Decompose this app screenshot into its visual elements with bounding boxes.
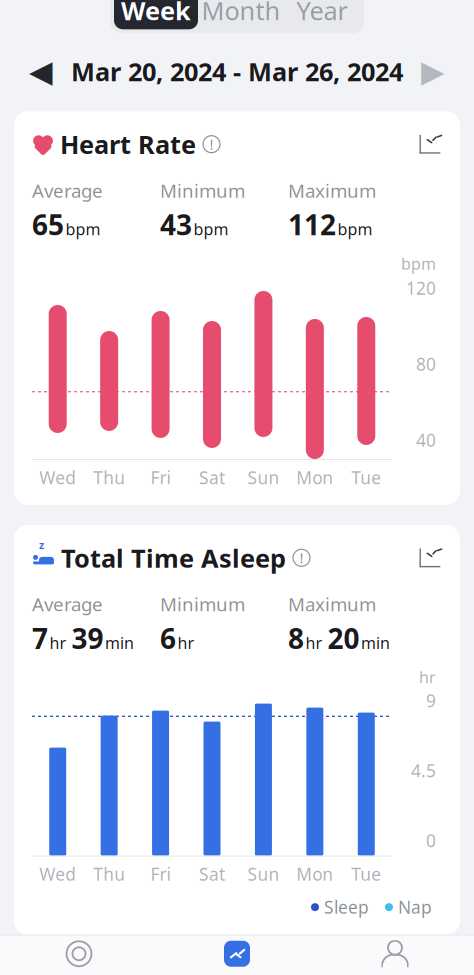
staticText: hr: [305, 632, 322, 653]
staticText: Thu: [93, 863, 125, 886]
staticText: Mon: [296, 863, 333, 886]
staticText: hr: [419, 666, 436, 688]
button[interactable]: Trends: [158, 936, 316, 975]
button[interactable]: Month: [198, 0, 284, 29]
staticText: bpm: [65, 218, 100, 240]
button[interactable]: Me: [316, 936, 474, 975]
staticText: bpm: [193, 218, 228, 240]
staticText: 43: [160, 206, 192, 243]
button[interactable]: Year: [284, 0, 360, 29]
staticText: Tue: [351, 863, 381, 886]
button[interactable]: Previous week: [14, 49, 68, 93]
staticText: ◀: [29, 54, 53, 89]
staticText: Maximum: [288, 592, 376, 616]
staticText: 0: [426, 829, 436, 852]
staticText: min: [105, 632, 134, 653]
staticText: Minimum: [160, 178, 245, 203]
button[interactable]: Open detailed chart for Heart Rate: [410, 132, 442, 157]
staticText: Thu: [93, 466, 125, 489]
staticText: Average: [32, 592, 103, 616]
staticText: 4.5: [411, 759, 436, 782]
staticText: 39: [71, 619, 103, 657]
button[interactable]: Insights: [0, 936, 158, 975]
button[interactable]: Week: [114, 0, 198, 29]
staticText: Year: [296, 0, 347, 27]
staticText: hr: [49, 632, 66, 653]
staticText: Minimum: [160, 592, 245, 616]
staticText: 40: [416, 428, 436, 451]
staticText: Maximum: [288, 178, 376, 203]
staticText: bpm: [401, 253, 436, 274]
staticText: !: [209, 134, 213, 154]
staticText: Fri: [151, 863, 171, 886]
staticText: Sun: [247, 466, 279, 489]
staticText: Total Time Asleep: [61, 541, 286, 575]
staticText: Heart Rate: [60, 127, 196, 161]
staticText: 6: [160, 619, 176, 657]
staticText: 65: [32, 206, 64, 243]
staticText: Sleep: [324, 896, 369, 919]
staticText: 9: [426, 689, 436, 712]
staticText: z: [39, 538, 44, 552]
button[interactable]: Open detailed chart for Total Time Aslee…: [410, 545, 442, 570]
staticText: 20: [327, 619, 359, 657]
staticText: Average: [32, 178, 103, 203]
staticText: 8: [288, 619, 304, 657]
staticText: Fri: [151, 466, 171, 489]
staticText: 120: [406, 276, 436, 299]
staticText: Week: [121, 0, 191, 27]
staticText: min: [361, 632, 390, 653]
staticText: Wed: [39, 466, 76, 489]
staticText: Wed: [39, 863, 76, 886]
staticText: ▶: [421, 54, 445, 89]
staticText: Tue: [351, 466, 381, 489]
staticText: Sat: [199, 466, 225, 489]
staticText: bpm: [337, 218, 372, 240]
button[interactable]: Next week: [406, 49, 460, 93]
staticText: 80: [416, 352, 436, 375]
staticText: Sat: [199, 863, 225, 886]
staticText: 7: [32, 619, 48, 657]
staticText: Month: [201, 0, 280, 27]
staticText: Nap: [398, 896, 432, 919]
staticText: hr: [177, 632, 194, 653]
staticText: Mon: [296, 466, 333, 489]
staticText: 112: [288, 206, 336, 243]
staticText: Sun: [247, 863, 279, 886]
staticText: Mar 20, 2024 - Mar 26, 2024: [71, 54, 403, 88]
staticText: !: [299, 548, 303, 568]
